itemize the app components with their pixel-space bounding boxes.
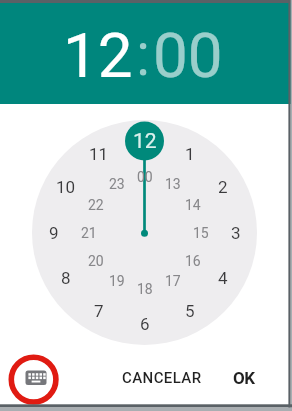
staticText: 8 bbox=[61, 268, 71, 288]
staticText: 17 bbox=[165, 273, 181, 289]
staticText: 22 bbox=[88, 197, 104, 213]
staticText: 4 bbox=[218, 268, 228, 288]
staticText: 7 bbox=[94, 301, 104, 321]
staticText: 21 bbox=[81, 225, 97, 241]
staticText: 19 bbox=[109, 273, 125, 289]
staticText: 12 bbox=[133, 129, 157, 154]
staticText: 20 bbox=[88, 253, 104, 269]
staticText: 6 bbox=[140, 314, 150, 334]
staticText: 00 bbox=[137, 169, 153, 185]
staticText: 9 bbox=[49, 223, 59, 243]
staticText: CANCELAR bbox=[122, 369, 202, 387]
button[interactable]: CANCELAR bbox=[114, 360, 210, 396]
staticText: 11 bbox=[89, 144, 109, 164]
staticText: 18 bbox=[137, 281, 153, 297]
staticText: 1 bbox=[185, 144, 195, 164]
staticText: 23 bbox=[109, 176, 125, 192]
staticText: 3 bbox=[231, 223, 241, 243]
staticText: 12 bbox=[63, 19, 133, 92]
button[interactable] bbox=[12, 357, 58, 403]
staticText: 2 bbox=[218, 177, 228, 197]
staticText: 15 bbox=[193, 225, 209, 241]
staticText: 10 bbox=[56, 177, 76, 197]
staticText: OK bbox=[233, 368, 255, 388]
staticText: 14 bbox=[185, 197, 201, 213]
staticText: 13 bbox=[165, 176, 181, 192]
staticText: 16 bbox=[185, 253, 201, 269]
button[interactable]: OK bbox=[216, 360, 272, 396]
staticText: 5 bbox=[185, 301, 195, 321]
staticText: 00 bbox=[153, 19, 223, 92]
